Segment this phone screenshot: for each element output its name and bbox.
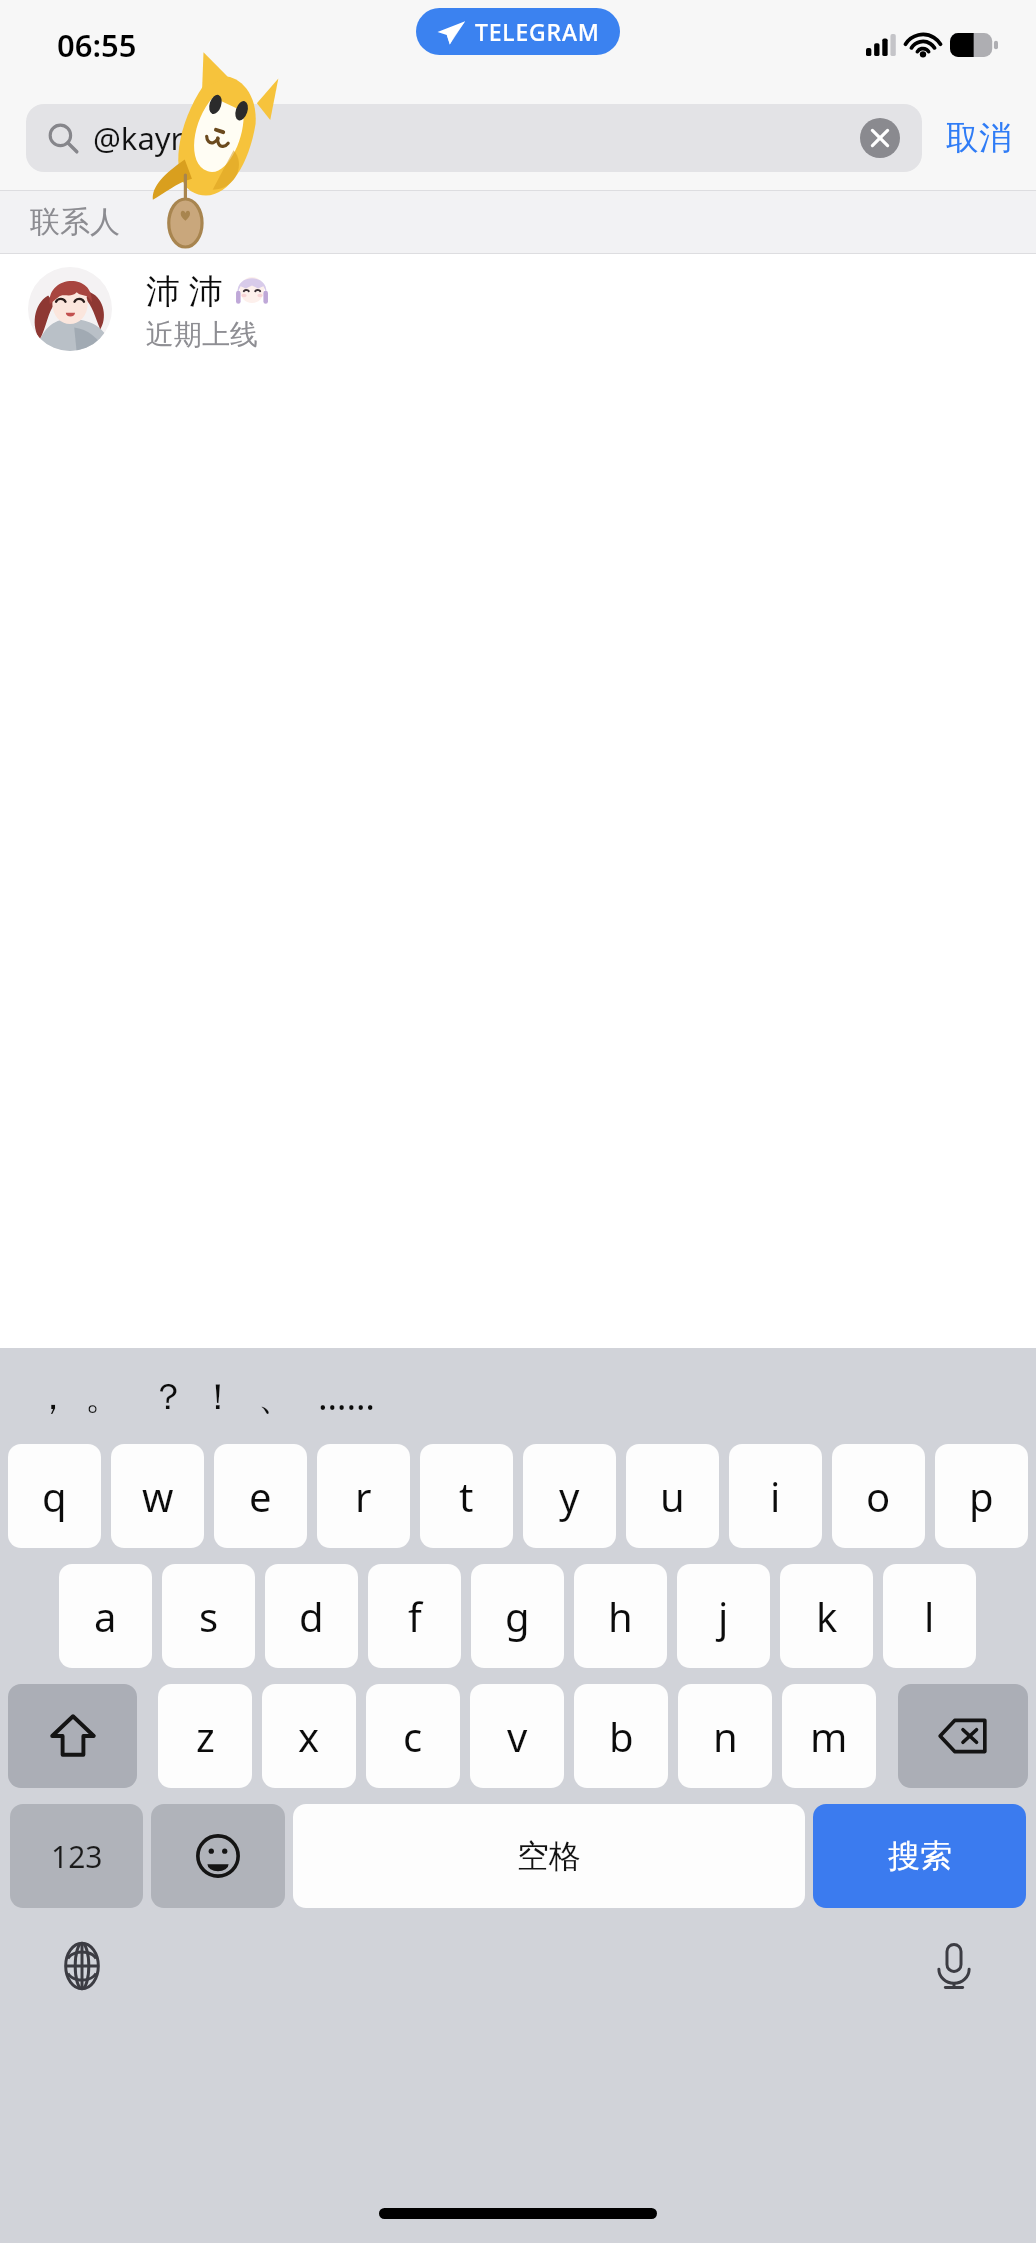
button[interactable]: 、 xyxy=(246,1366,306,1427)
staticText: 近期上线 xyxy=(146,317,258,352)
staticText: d xyxy=(299,1589,324,1643)
button[interactable]: s xyxy=(162,1564,255,1668)
button[interactable]: j xyxy=(677,1564,770,1668)
button[interactable]: n xyxy=(678,1684,772,1788)
button[interactable]: ？ xyxy=(138,1366,198,1427)
button[interactable]: Backspace xyxy=(898,1684,1028,1788)
staticText: n xyxy=(713,1709,738,1763)
button[interactable]: Change keyboard language xyxy=(50,1934,114,1998)
button[interactable]: g xyxy=(471,1564,564,1668)
staticText: u xyxy=(660,1469,685,1523)
button[interactable]: i xyxy=(729,1444,822,1548)
button[interactable]: m xyxy=(782,1684,876,1788)
button[interactable]: e xyxy=(214,1444,307,1548)
staticText: z xyxy=(196,1709,215,1763)
staticText: 、 xyxy=(258,1374,294,1419)
button[interactable]: w xyxy=(111,1444,204,1548)
staticText: ！ xyxy=(200,1374,236,1419)
button[interactable]: Emoji xyxy=(151,1804,285,1908)
staticText: …… xyxy=(318,1372,375,1421)
button[interactable]: 沛 沛 xyxy=(0,254,1036,364)
button[interactable]: Clear text xyxy=(860,118,900,158)
staticText: l xyxy=(924,1589,935,1643)
staticText: x xyxy=(298,1709,320,1763)
staticText: y xyxy=(559,1469,580,1523)
staticText: 空格 xyxy=(517,1836,581,1876)
button[interactable]: @kayrolll xyxy=(26,104,922,172)
staticText: @kayrolll xyxy=(93,117,226,159)
staticText: k xyxy=(816,1589,838,1643)
button[interactable]: a xyxy=(59,1564,152,1668)
button[interactable]: 。 xyxy=(73,1366,133,1427)
button[interactable]: l xyxy=(883,1564,976,1668)
staticText: 联系人 xyxy=(30,203,120,241)
button[interactable]: d xyxy=(265,1564,358,1668)
staticText: g xyxy=(505,1589,530,1643)
staticText: t xyxy=(459,1469,474,1523)
button[interactable]: r xyxy=(317,1444,410,1548)
staticText: 搜索 xyxy=(888,1836,952,1876)
staticText: a xyxy=(94,1589,117,1643)
staticText: j xyxy=(718,1589,729,1643)
staticText: ？ xyxy=(150,1374,186,1419)
staticText: h xyxy=(608,1589,633,1643)
button[interactable]: 123 xyxy=(10,1804,143,1908)
button[interactable]: ， xyxy=(23,1366,83,1427)
button[interactable]: 取消 xyxy=(922,103,1036,173)
button[interactable]: f xyxy=(368,1564,461,1668)
staticText: i xyxy=(770,1469,781,1523)
button[interactable]: q xyxy=(8,1444,101,1548)
staticText: f xyxy=(408,1589,422,1643)
staticText: w xyxy=(142,1469,174,1523)
staticText: ， xyxy=(35,1374,71,1419)
staticText: e xyxy=(249,1469,272,1523)
button[interactable]: v xyxy=(470,1684,564,1788)
staticText: 123 xyxy=(51,1836,103,1877)
button[interactable]: y xyxy=(523,1444,616,1548)
staticText: 取消 xyxy=(946,117,1012,159)
staticText: o xyxy=(866,1469,891,1523)
staticText: r xyxy=(355,1469,372,1523)
button[interactable]: ！ xyxy=(188,1366,248,1427)
staticText: 沛 沛 xyxy=(146,267,223,313)
staticText: TELEGRAM xyxy=(475,16,600,47)
staticText: q xyxy=(42,1469,67,1523)
button[interactable]: b xyxy=(574,1684,668,1788)
button[interactable]: z xyxy=(158,1684,252,1788)
button[interactable]: k xyxy=(780,1564,873,1668)
button[interactable]: t xyxy=(420,1444,513,1548)
staticText: c xyxy=(403,1709,423,1763)
button[interactable]: p xyxy=(935,1444,1028,1548)
staticText: s xyxy=(199,1589,219,1643)
button[interactable]: Shift xyxy=(8,1684,137,1788)
button[interactable]: …… xyxy=(306,1364,387,1429)
button[interactable]: 搜索 xyxy=(813,1804,1026,1908)
button[interactable]: Voice input xyxy=(922,1934,986,1998)
button[interactable]: h xyxy=(574,1564,667,1668)
button[interactable]: o xyxy=(832,1444,925,1548)
button[interactable]: c xyxy=(366,1684,460,1788)
button[interactable]: u xyxy=(626,1444,719,1548)
staticText: v xyxy=(507,1709,528,1763)
button[interactable]: TELEGRAM xyxy=(416,8,620,55)
staticText: 06:55 xyxy=(57,24,137,66)
staticText: 。 xyxy=(85,1374,121,1419)
staticText: p xyxy=(969,1469,994,1523)
staticText: b xyxy=(609,1709,634,1763)
button[interactable]: x xyxy=(262,1684,356,1788)
staticText: m xyxy=(810,1709,848,1763)
button[interactable]: 空格 xyxy=(293,1804,805,1908)
